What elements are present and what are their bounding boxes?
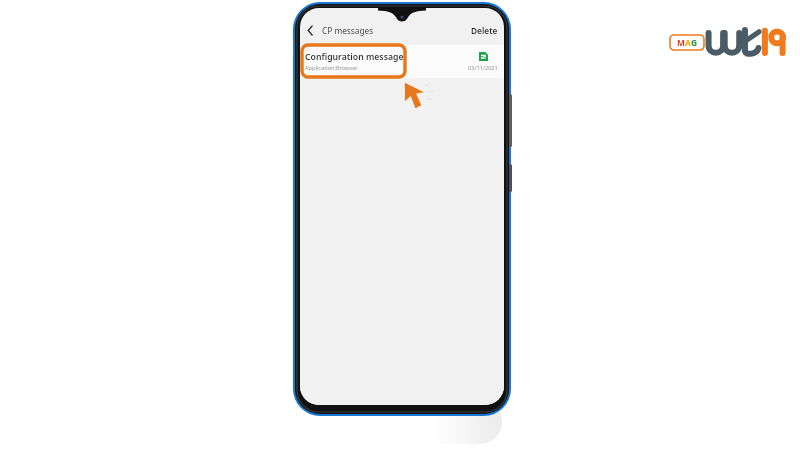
staticText: CP messages: [322, 25, 374, 36]
staticText: G: [691, 37, 698, 48]
button[interactable]: Configuration message: [300, 45, 504, 78]
staticText: Configuration message: [305, 51, 404, 63]
staticText: A: [685, 37, 691, 48]
staticText: Application:Browser: [305, 64, 358, 72]
staticText: Delete: [471, 25, 498, 36]
button[interactable]: Delete: [465, 21, 504, 40]
staticText: 03/11/2021: [468, 64, 498, 72]
button[interactable]: Back: [300, 20, 320, 40]
staticText: M: [677, 37, 685, 48]
